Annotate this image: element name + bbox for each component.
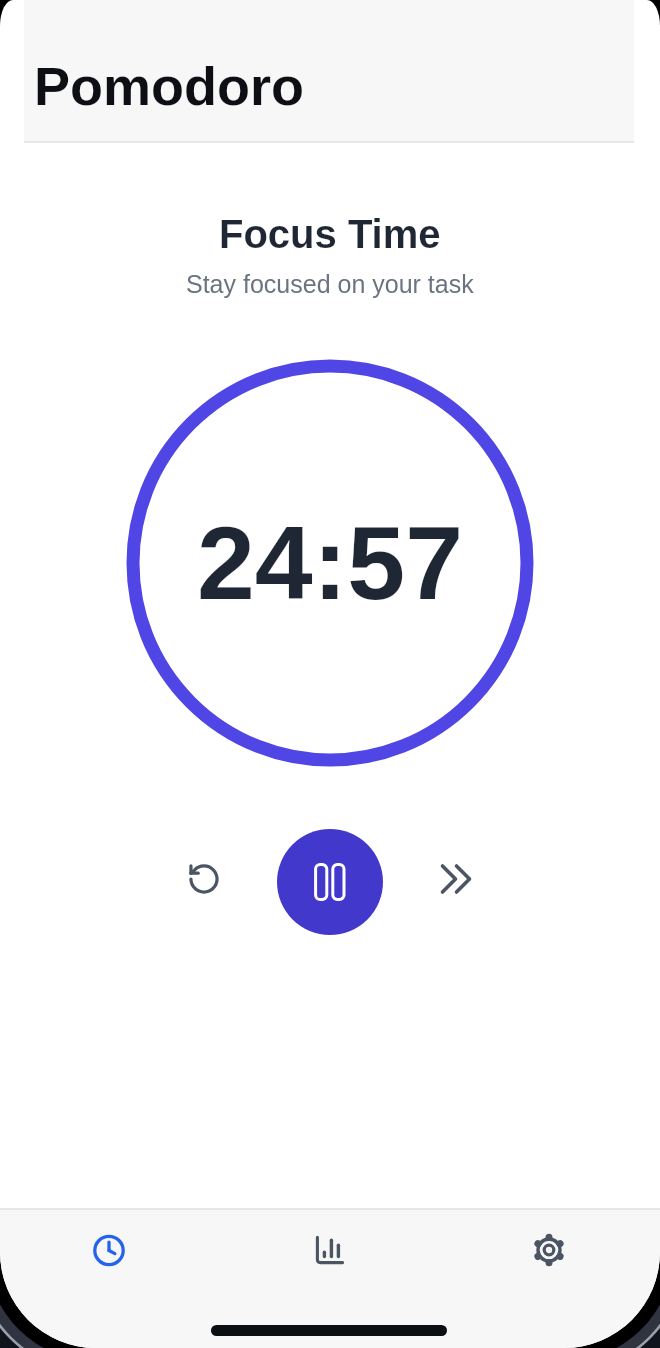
button[interactable] [240, 1212, 420, 1290]
staticText: 24:57 [197, 505, 463, 621]
button[interactable] [459, 1212, 639, 1290]
staticText: Pomodoro [34, 56, 304, 116]
staticText: Stay focused on your task [186, 270, 474, 298]
button[interactable] [277, 829, 383, 935]
button[interactable] [19, 1212, 199, 1290]
button[interactable] [172, 847, 236, 911]
staticText: Focus Time [219, 212, 441, 257]
button[interactable] [423, 847, 487, 911]
